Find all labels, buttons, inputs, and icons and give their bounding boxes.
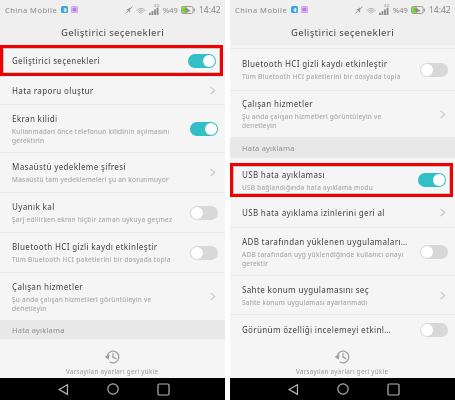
button[interactable]: Sahte konum uygulamasını seç <box>230 276 455 314</box>
staticText: %49 <box>393 5 408 15</box>
staticText: China Mobile <box>5 5 58 15</box>
button[interactable]: Switch on <box>188 54 216 68</box>
button[interactable]: Back <box>268 378 318 400</box>
staticText: Bluetooth HCI gizli kaydı etkinleştir <box>242 58 388 69</box>
staticText: Bluetooth HCI gizli kaydı etkinleştir <box>12 241 158 252</box>
staticText: Çalışan hizmetler <box>242 98 313 109</box>
staticText: Hata ayıklama <box>12 325 65 335</box>
button[interactable]: Recent apps <box>368 378 418 400</box>
button[interactable]: Switch off <box>420 63 448 77</box>
staticText: 4G <box>154 3 160 9</box>
staticText: ADB tarafından uyg yüklendiğinde kullanı… <box>242 250 404 268</box>
button[interactable]: Hata raporu oluştur <box>0 77 225 104</box>
staticText: 14:42 <box>429 4 451 16</box>
staticText: Hata raporu oluştur <box>12 85 94 96</box>
staticText: Kullanmadan önce telefonun kilidinin açı… <box>12 127 170 145</box>
staticText: Sahte konum uygulaması ayarlanmadı <box>242 298 368 307</box>
button[interactable]: Home <box>318 378 368 400</box>
staticText: USB hata ayıklaması <box>242 169 325 180</box>
button[interactable]: ADB tarafından yüklenen uygulamaları… <box>230 228 455 275</box>
staticText: Şu anda çalışan hizmetleri görüntüleyin … <box>242 112 382 130</box>
button[interactable]: Restore default settings <box>230 350 455 375</box>
staticText: Şarj edilirken ekran hiçbir zaman uykuya… <box>12 215 173 224</box>
button[interactable]: USB hata ayıklama izinlerini geri al <box>230 197 455 227</box>
staticText: Şu anda çalışan hizmetleri görüntüleyin … <box>12 295 152 313</box>
button[interactable]: Restore default settings <box>0 350 225 375</box>
staticText: Geliştirici seçenekleri <box>12 55 100 66</box>
button[interactable]: Ekran kilidi <box>0 105 225 152</box>
staticText: Tüm Bluetooth HCI paketlerini bir dosyad… <box>242 72 401 81</box>
button[interactable]: Switch on <box>190 122 218 136</box>
button[interactable]: Switch off <box>190 246 218 260</box>
staticText: Geliştirici seçenekleri <box>61 26 165 39</box>
staticText: Varsayılan ayarları geri yükle <box>296 367 389 375</box>
button[interactable]: Çalışan hizmetler <box>230 91 455 137</box>
staticText: Görünüm özelliği incelemeyi etkinl… <box>242 324 392 335</box>
staticText: ADB tarafından yüklenen uygulamaları… <box>242 236 408 247</box>
staticText: 14:42 <box>199 4 221 16</box>
button[interactable]: Masaüstü yedekleme şifresi <box>0 153 225 192</box>
button[interactable]: Back <box>38 378 88 400</box>
staticText: China Mobile <box>235 5 288 15</box>
button[interactable]: Switch off <box>420 323 448 337</box>
staticText: Masaüstü tam yedeklemeleri şu an korunmu… <box>12 175 169 184</box>
button[interactable]: Bluetooth HCI gizli kaydı etkinleştir <box>0 233 225 272</box>
button[interactable]: Bluetooth HCI gizli kaydı etkinleştir <box>230 49 455 90</box>
button[interactable]: Uyanık kal <box>0 193 225 232</box>
staticText: Sahte konum uygulamasını seç <box>242 284 369 295</box>
button[interactable]: Switch off <box>190 206 218 220</box>
staticText: Masaüstü yedekleme şifresi <box>12 161 126 172</box>
staticText: %49 <box>163 5 178 15</box>
staticText: Hata ayıklama <box>242 143 295 153</box>
staticText: Çalışan hizmetler <box>12 281 83 292</box>
staticText: Uyanık kal <box>12 201 55 212</box>
button[interactable]: Recent apps <box>138 378 188 400</box>
button[interactable]: Switch off <box>420 245 448 259</box>
staticText: Geliştirici seçenekleri <box>291 26 395 39</box>
button[interactable]: Çalışan hizmetler <box>0 273 225 320</box>
staticText: Tüm Bluetooth HCI paketlerini bir dosyad… <box>12 255 171 264</box>
button[interactable]: Switch on <box>418 173 446 187</box>
staticText: USB bağlandığında hata ayıklama modu <box>242 183 374 192</box>
button[interactable]: Görünüm özelliği incelemeyi etkinl… <box>230 315 455 344</box>
staticText: Ekran kilidi <box>12 113 58 124</box>
button[interactable]: Home <box>88 378 138 400</box>
staticText: Varsayılan ayarları geri yükle <box>66 367 159 375</box>
staticText: USB hata ayıklama izinlerini geri al <box>242 207 385 218</box>
staticText: 4G <box>384 3 390 9</box>
